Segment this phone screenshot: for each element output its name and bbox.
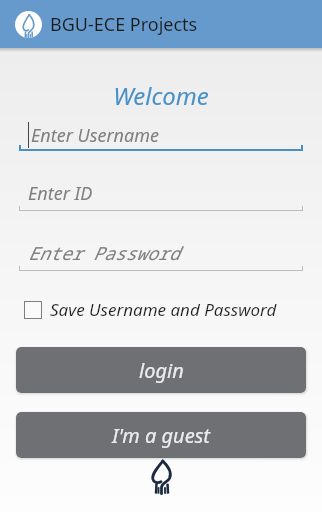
staticText: Enter Username [31, 123, 159, 148]
other: BGU logo [149, 460, 174, 494]
other: BGU-ECE app logo [21, 14, 36, 38]
staticText: Enter ID [28, 181, 93, 206]
button[interactable]: Enter ID [19, 175, 303, 211]
button[interactable]: Save Username and Password [24, 298, 277, 321]
button[interactable]: Enter Password [19, 235, 303, 271]
staticText: Welcome [0, 79, 322, 112]
staticText: I'm a guest [112, 422, 210, 449]
button[interactable]: login [16, 347, 306, 393]
staticText: Save Username and Password [50, 298, 277, 321]
staticText: BGU-ECE Projects [50, 12, 198, 37]
staticText: Enter Password [28, 241, 180, 266]
button[interactable]: Enter Username [19, 115, 303, 151]
staticText: login [139, 357, 184, 384]
button[interactable]: I'm a guest [16, 412, 306, 458]
